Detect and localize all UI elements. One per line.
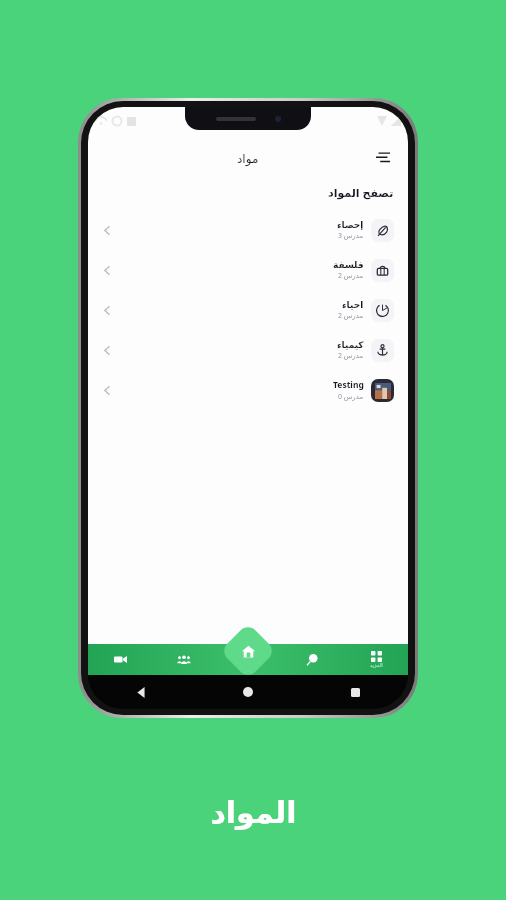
staticText: إحصاء (337, 220, 364, 230)
button[interactable]: Back (130, 681, 152, 703)
staticText: 2 مدرس (338, 311, 364, 321)
staticText: 2 مدرس (338, 271, 364, 281)
button[interactable]: Menu (370, 144, 396, 170)
staticText: المواد (210, 795, 297, 830)
button[interactable]: إحصاء (88, 210, 408, 250)
staticText: المزيد (370, 662, 383, 668)
button[interactable]: المزيد (370, 644, 383, 675)
staticText: 3 مدرس (338, 231, 364, 241)
staticText: احياء (342, 300, 364, 310)
button[interactable]: Search (280, 644, 344, 675)
button[interactable]: Recents (344, 681, 366, 703)
staticText: Testing (333, 379, 364, 391)
button[interactable]: Video (88, 644, 152, 675)
button[interactable]: Home (220, 623, 276, 679)
staticText: فلسفة (333, 260, 364, 270)
button[interactable]: Testing (88, 370, 408, 410)
staticText: 2 مدرس (338, 351, 364, 361)
button[interactable]: Groups (152, 644, 216, 675)
staticText: كيمياء (337, 340, 364, 350)
staticText: مواد (237, 152, 259, 166)
button[interactable]: فلسفة (88, 250, 408, 290)
button[interactable]: Home (237, 681, 259, 703)
staticText: تصفح المواد (328, 185, 394, 200)
staticText: 0 مدرس (338, 392, 364, 402)
button[interactable]: كيمياء (88, 330, 408, 370)
button[interactable]: احياء (88, 290, 408, 330)
